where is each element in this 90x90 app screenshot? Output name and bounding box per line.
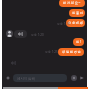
staticText: 넵 ! (76, 40, 81, 44)
button[interactable]: 메시지 입력 (13, 74, 67, 82)
button[interactable]: Voice message (14, 30, 27, 38)
button[interactable]: 넵 ! (73, 38, 84, 46)
button[interactable]: Emoji (70, 74, 78, 82)
staticText: 메시지 입력 (17, 76, 35, 81)
staticText: 오 후 에 봬 (68, 21, 83, 25)
button[interactable]: Send message (78, 74, 86, 82)
staticText: 반 가 워 요 ~ (63, 1, 81, 5)
staticText: 오후 1:20 (31, 33, 44, 37)
button[interactable]: 내 일 뵙 겠 습 (58, 48, 84, 56)
button[interactable]: 반 가 워 요 ~ (59, 0, 85, 7)
button[interactable]: Add attachment (4, 74, 12, 82)
button[interactable]: 넵 좋 아 (69, 9, 85, 17)
button[interactable]: 오 후 에 봬 (66, 19, 85, 27)
button[interactable]: Profile photo (6, 30, 13, 37)
staticText: 넵 좋 아 (72, 11, 83, 15)
staticText: 오후 1:18 (57, 22, 70, 26)
staticText: 내 일 뵙 겠 습 (62, 50, 81, 54)
staticText: 오후 1:25 (45, 50, 58, 54)
button[interactable]: Older voice message (10, 61, 17, 65)
